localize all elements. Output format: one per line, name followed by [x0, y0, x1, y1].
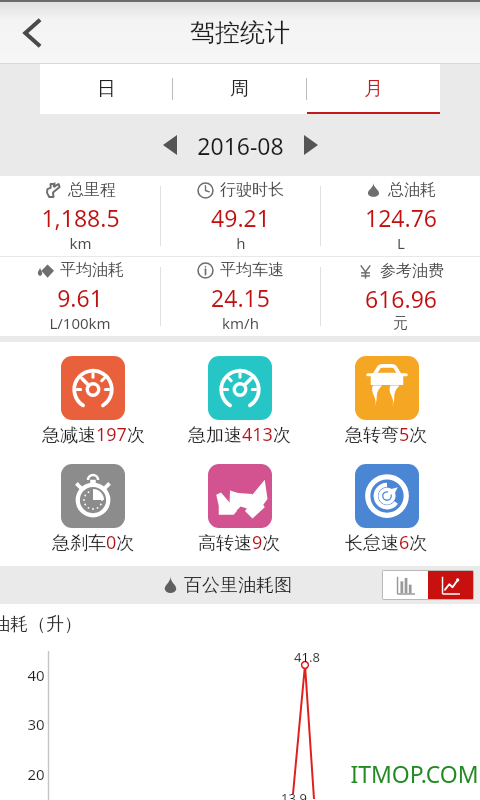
staticText: 平均车速 — [220, 260, 284, 280]
button[interactable]: 月 — [307, 64, 440, 114]
staticText: 24.15 — [211, 282, 270, 313]
button[interactable]: 总油耗 — [321, 176, 480, 256]
staticText: L/100km — [49, 313, 111, 333]
staticText: 行驶时长 — [220, 180, 284, 200]
staticText: 124.76 — [365, 202, 437, 233]
staticText: km — [69, 233, 92, 253]
button[interactable]: Bar chart — [383, 571, 428, 599]
button[interactable]: Back — [8, 9, 56, 57]
staticText: 总里程 — [68, 180, 116, 200]
button[interactable]: 高转速9次 — [166, 464, 313, 555]
button[interactable]: 急刹车0次 — [20, 464, 166, 555]
button[interactable]: 急加速413次 — [166, 356, 313, 447]
button[interactable]: Next month — [290, 125, 330, 165]
button[interactable]: 行驶时长 — [161, 176, 320, 256]
staticText: 40 — [27, 665, 45, 685]
staticText: 30 — [27, 714, 45, 734]
staticText: 油耗（升） — [0, 613, 82, 636]
staticText: 元 — [393, 314, 408, 333]
staticText: km/h — [222, 313, 259, 333]
button[interactable]: 急转弯5次 — [313, 356, 460, 447]
button[interactable]: 长怠速6次 — [313, 464, 460, 555]
staticText: 平均油耗 — [60, 260, 124, 280]
staticText: 13.9 — [281, 789, 307, 800]
staticText: h — [236, 233, 246, 253]
staticText: 驾控统计 — [190, 17, 290, 48]
staticText: 参考油费 — [380, 261, 444, 281]
staticText: 9.61 — [57, 282, 103, 313]
button[interactable]: 平均车速 — [161, 257, 320, 336]
staticText: 长怠速6次 — [345, 530, 428, 555]
staticText: 急加速413次 — [188, 422, 291, 447]
button[interactable]: Previous month — [151, 125, 191, 165]
staticText: ITMOP.COM — [350, 758, 479, 789]
staticText: 616.96 — [365, 283, 437, 314]
staticText: 高转速9次 — [198, 530, 281, 555]
staticText: 百公里油耗图 — [184, 574, 292, 597]
staticText: 49.21 — [211, 202, 270, 233]
staticText: 2016-08 — [197, 130, 284, 161]
staticText: 总油耗 — [388, 180, 436, 200]
button[interactable]: 总里程 — [0, 176, 160, 256]
staticText: L — [397, 233, 405, 253]
staticText: 急刹车0次 — [52, 530, 135, 555]
staticText: 20 — [27, 764, 45, 784]
staticText: 1,188.5 — [41, 202, 120, 233]
staticText: 急减速197次 — [42, 422, 145, 447]
button[interactable]: 平均油耗 — [0, 257, 160, 336]
button[interactable]: 参考油费 — [321, 257, 480, 336]
staticText: 急转弯5次 — [345, 422, 428, 447]
staticText: 41.8 — [294, 648, 320, 666]
staticText: 月 — [364, 77, 383, 101]
button[interactable]: Line chart — [428, 571, 473, 599]
button[interactable]: 日 — [40, 64, 172, 114]
button[interactable]: 急减速197次 — [20, 356, 166, 447]
staticText: 周 — [230, 77, 249, 101]
button[interactable]: 周 — [173, 64, 306, 114]
staticText: 日 — [97, 77, 116, 101]
